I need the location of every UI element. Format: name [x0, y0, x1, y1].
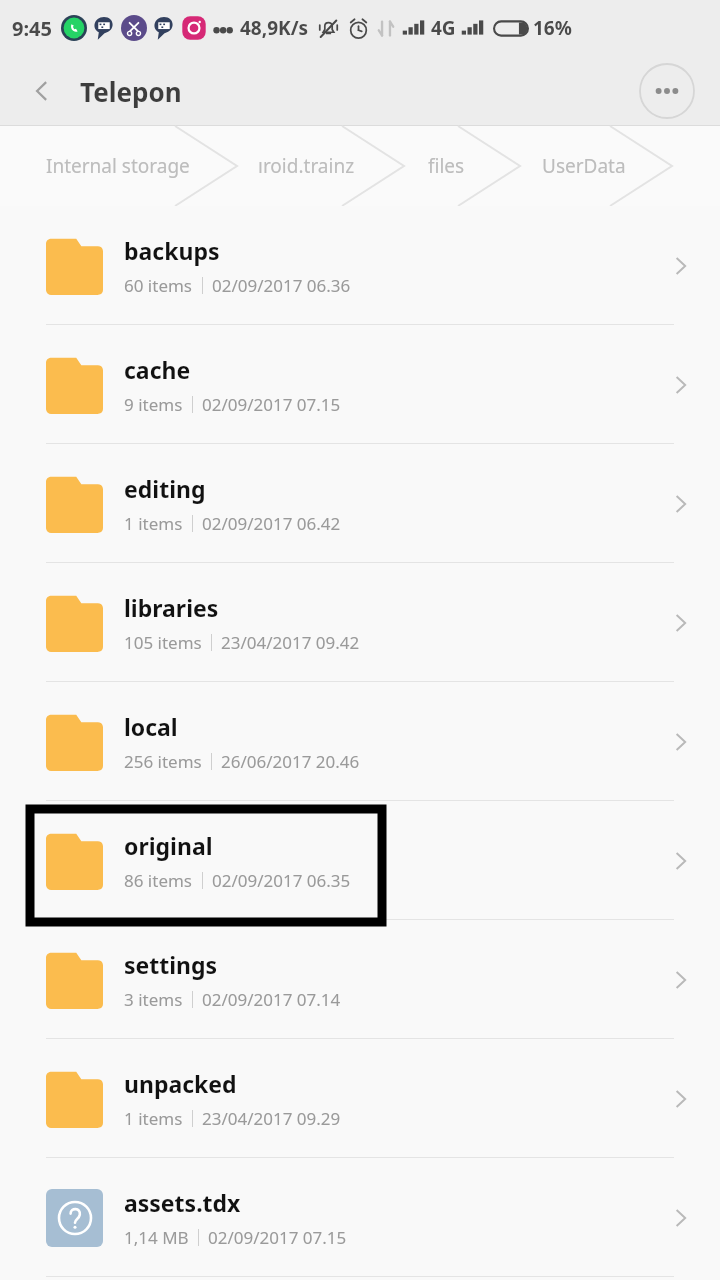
button[interactable]: cache [0, 325, 720, 444]
staticText: 86 items [124, 869, 193, 892]
staticText: 48,9K/s [240, 15, 309, 41]
staticText: 1 items [124, 512, 183, 535]
button[interactable]: Internal storage [46, 153, 190, 179]
button[interactable]: local [0, 682, 720, 801]
button[interactable]: unpacked [0, 1039, 720, 1158]
staticText: 02/09/2017 06.36 [212, 274, 351, 297]
button[interactable]: More options [640, 64, 694, 118]
staticText: 60 items [124, 274, 193, 297]
staticText: editing [124, 473, 206, 504]
staticText: 02/09/2017 06.35 [212, 869, 351, 892]
staticText: 9:45 [12, 15, 52, 42]
staticText: original [124, 830, 213, 861]
staticText: Telepon [80, 74, 182, 109]
staticText: 16% [533, 15, 572, 41]
staticText: unpacked [124, 1068, 237, 1099]
staticText: 9 items [124, 393, 183, 416]
staticText: 105 items [124, 631, 202, 654]
button[interactable]: assets.tdx [0, 1158, 720, 1277]
staticText: cache [124, 354, 191, 385]
button[interactable]: backups [0, 206, 720, 325]
staticText: assets.tdx [124, 1187, 241, 1218]
button[interactable]: libraries [0, 563, 720, 682]
staticText: backups [124, 235, 220, 266]
staticText: 3 items [124, 988, 183, 1011]
button[interactable]: ıroid.trainz [258, 153, 355, 179]
button[interactable]: settings [0, 920, 720, 1039]
staticText: 26/06/2017 20.46 [221, 750, 360, 773]
button[interactable]: Back [12, 61, 72, 121]
staticText: 1,14 MB [124, 1226, 189, 1249]
button[interactable]: editing [0, 444, 720, 563]
staticText: 02/09/2017 07.15 [208, 1226, 347, 1249]
staticText: 256 items [124, 750, 202, 773]
staticText: 02/09/2017 06.42 [202, 512, 341, 535]
button[interactable]: original [0, 801, 720, 920]
button[interactable]: UserData [542, 153, 626, 179]
staticText: 23/04/2017 09.42 [221, 631, 360, 654]
staticText: 23/04/2017 09.29 [202, 1107, 341, 1130]
staticText: libraries [124, 592, 219, 623]
staticText: 1 items [124, 1107, 183, 1130]
staticText: settings [124, 949, 218, 980]
staticText: 02/09/2017 07.14 [202, 988, 341, 1011]
button[interactable]: files [428, 153, 465, 179]
staticText: 02/09/2017 07.15 [202, 393, 341, 416]
staticText: 4G [431, 15, 456, 41]
staticText: local [124, 711, 178, 742]
